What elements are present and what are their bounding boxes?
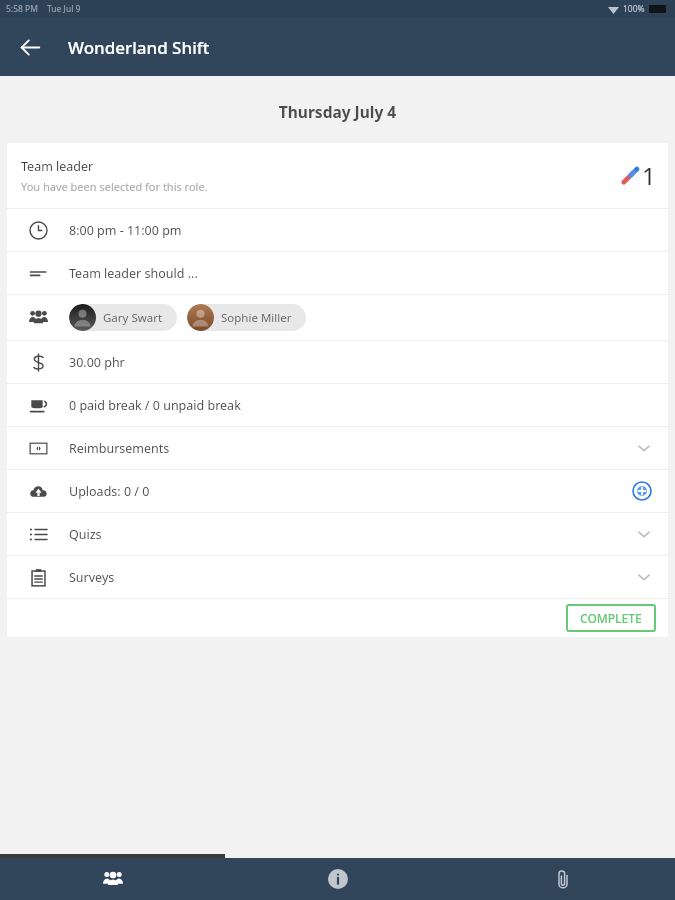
button[interactable]: Surveys [7,556,668,598]
button[interactable]: 0 paid break / 0 unpaid break [7,384,668,426]
staticText: Uploads: 0 / 0 [69,483,150,500]
button[interactable]: Gary Swart [69,304,177,331]
button[interactable]: COMPLETE [566,604,656,632]
button[interactable]: Quizs [7,513,668,555]
button[interactable]: Uploads: 0 / 0 [7,470,668,512]
button[interactable]: Info [225,858,450,900]
button[interactable]: Sophie Miller [187,304,306,331]
staticText: Team leader [21,158,94,175]
staticText: Reimbursements [69,440,170,457]
staticText: Tue Jul 9 [47,3,81,15]
staticText: COMPLETE [580,610,642,626]
staticText: Thursday July 4 [0,101,675,122]
staticText: 100% [623,3,645,15]
staticText: 5:58 PM [6,3,38,15]
button[interactable]: Add upload [632,481,652,501]
staticText: Quizs [69,526,102,543]
button[interactable]: 30.00 phr [7,341,668,383]
staticText: 1 [642,159,656,192]
staticText: Sophie Miller [221,310,292,326]
staticText: 0 paid break / 0 unpaid break [69,397,241,414]
button[interactable]: Reimbursements [7,427,668,469]
button[interactable]: People [0,858,225,900]
button[interactable]: 8:00 pm - 11:00 pm [7,209,668,251]
button[interactable]: Team leader should ... [7,252,668,294]
button[interactable]: Back [8,25,52,69]
button[interactable]: Team leader [7,143,668,208]
staticText: Gary Swart [103,310,163,326]
staticText: Wonderland Shift [68,36,210,59]
staticText: Team leader should ... [69,265,198,282]
staticText: You have been selected for this role. [21,179,208,194]
staticText: Surveys [69,569,115,586]
button[interactable]: Attachments [450,858,675,900]
staticText: 8:00 pm - 11:00 pm [69,222,182,239]
staticText: 30.00 phr [69,354,125,371]
button[interactable]: Gary Swart [7,295,668,340]
